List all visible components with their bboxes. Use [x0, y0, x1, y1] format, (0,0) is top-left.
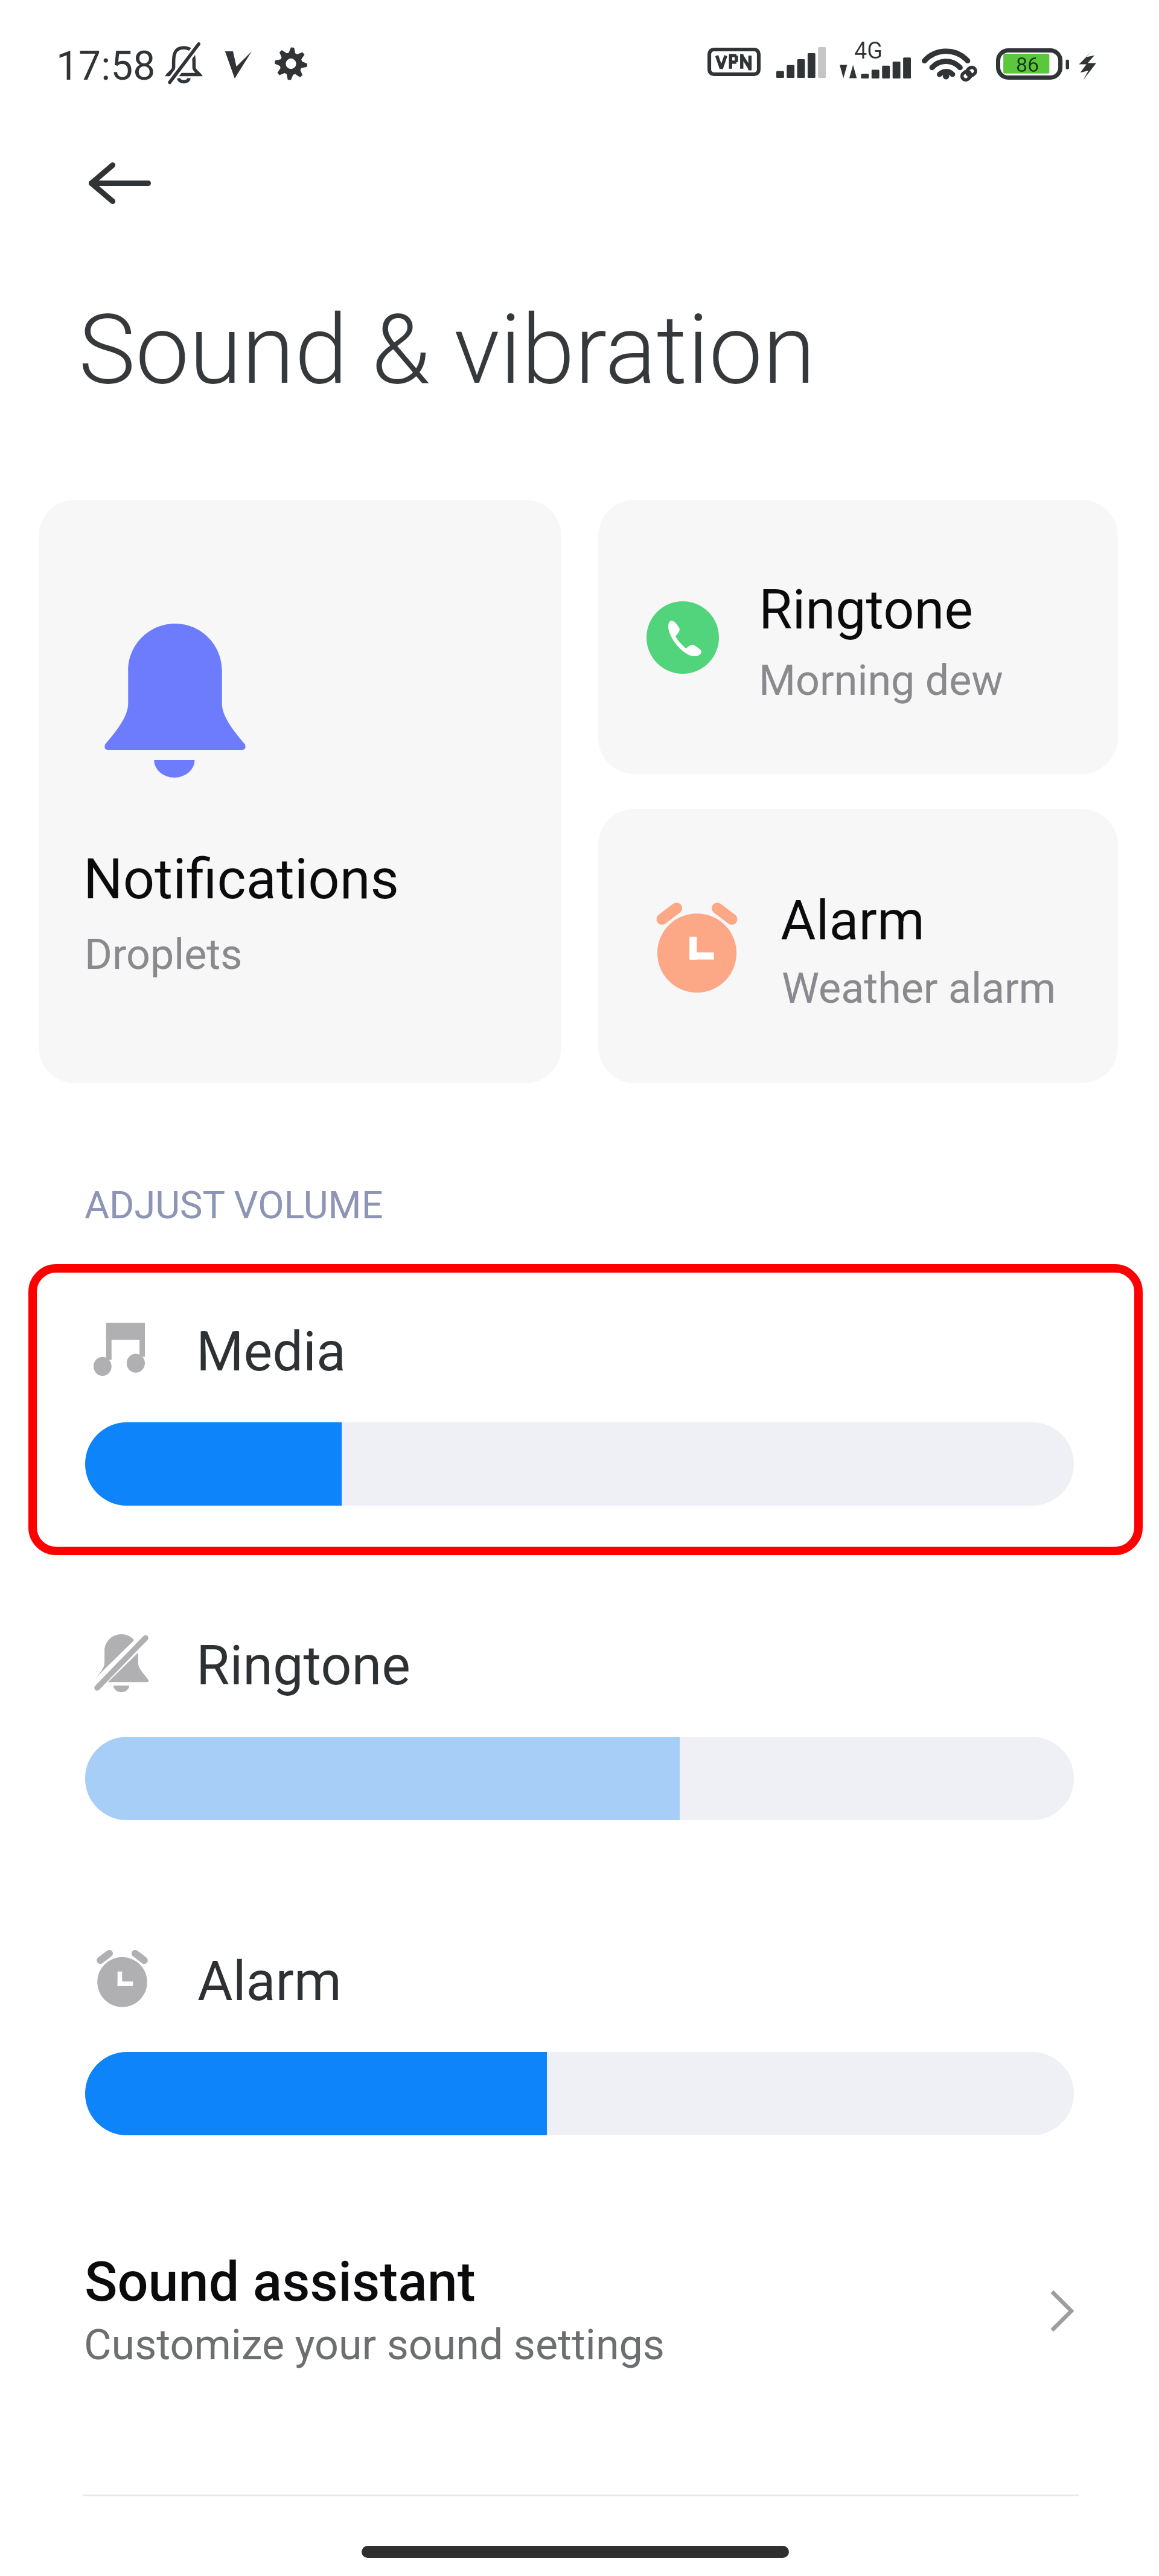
button[interactable] — [598, 500, 1118, 774]
staticText: Notifications — [83, 847, 399, 912]
staticText: Morning dew — [759, 656, 1003, 705]
button[interactable] — [66, 1914, 1093, 2143]
staticText: 86 — [1016, 53, 1039, 77]
staticText: Media — [196, 1320, 346, 1384]
button[interactable] — [39, 500, 561, 1083]
button[interactable] — [598, 809, 1118, 1083]
staticText: Weather alarm — [782, 964, 1056, 1013]
staticText: Sound & vibration — [78, 293, 816, 406]
staticText: 17:58 — [56, 43, 156, 89]
staticText: Customize your sound settings — [84, 2320, 665, 2370]
staticText: Sound assistant — [85, 2251, 476, 2314]
staticText: ADJUST VOLUME — [85, 1183, 383, 1228]
staticText: Ringtone — [759, 578, 973, 642]
staticText: Droplets — [85, 930, 243, 979]
button[interactable] — [0, 2210, 1159, 2451]
staticText: 4G — [854, 37, 883, 65]
staticText: Alarm — [781, 889, 925, 953]
button[interactable]: Back — [68, 132, 171, 234]
button[interactable] — [66, 1598, 1093, 1827]
staticText: Ringtone — [196, 1634, 410, 1698]
staticText: Alarm — [197, 1950, 342, 2013]
button[interactable] — [66, 1286, 1093, 1513]
